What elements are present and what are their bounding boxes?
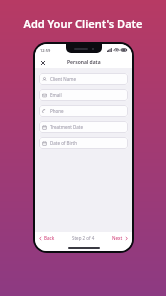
staticText: Next <box>112 235 123 241</box>
staticText: Email <box>50 92 62 98</box>
button[interactable]: Next <box>111 233 129 243</box>
staticText: Step 2 of 4 <box>72 235 95 241</box>
staticText: Back <box>44 235 55 241</box>
staticText: Client Name <box>50 76 76 82</box>
staticText: Date of Birth <box>50 140 77 146</box>
button[interactable]: Back <box>38 233 56 243</box>
staticText: Personal data <box>67 59 101 66</box>
button[interactable]: Phone <box>39 105 128 117</box>
button[interactable]: Close <box>38 58 47 67</box>
staticText: Phone <box>50 108 64 114</box>
button[interactable]: Client Name <box>39 73 128 85</box>
staticText: 12:59 <box>40 48 51 53</box>
button[interactable]: Date of Birth <box>39 137 128 149</box>
button[interactable]: Email <box>39 89 128 101</box>
staticText: Add Your Client's Date <box>0 16 166 31</box>
staticText: Treatment Date <box>50 124 84 130</box>
button[interactable]: Treatment Date <box>39 121 128 133</box>
